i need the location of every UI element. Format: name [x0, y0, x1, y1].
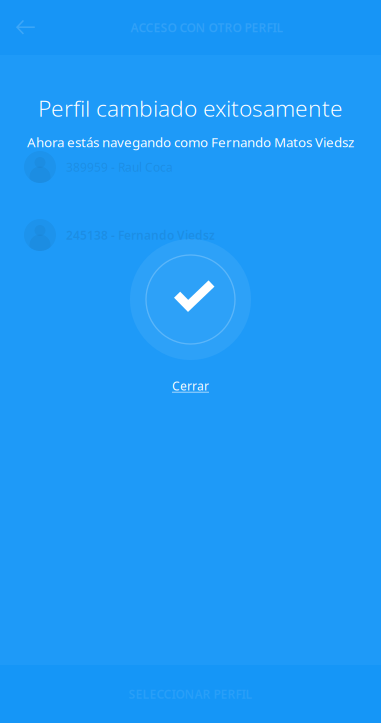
staticText: SELECCIONAR PERFIL: [128, 686, 252, 702]
staticText: 389959 - Raul Coca: [66, 159, 173, 175]
button[interactable]: 245138 - Fernando Viedsz: [0, 213, 381, 257]
staticText: Perfil cambiado exitosamente: [38, 93, 343, 123]
staticText: Cerrar: [172, 378, 209, 394]
staticText: ACCESO CON OTRO PERFIL: [130, 19, 283, 35]
button[interactable]: Atrás: [0, 5, 44, 49]
button[interactable]: Cerrar: [160, 371, 221, 401]
staticText: Ahora estás navegando como Fernando Mato…: [27, 133, 354, 151]
staticText: 245138 - Fernando Viedsz: [66, 227, 215, 243]
button[interactable]: 389959 - Raul Coca: [0, 145, 381, 189]
